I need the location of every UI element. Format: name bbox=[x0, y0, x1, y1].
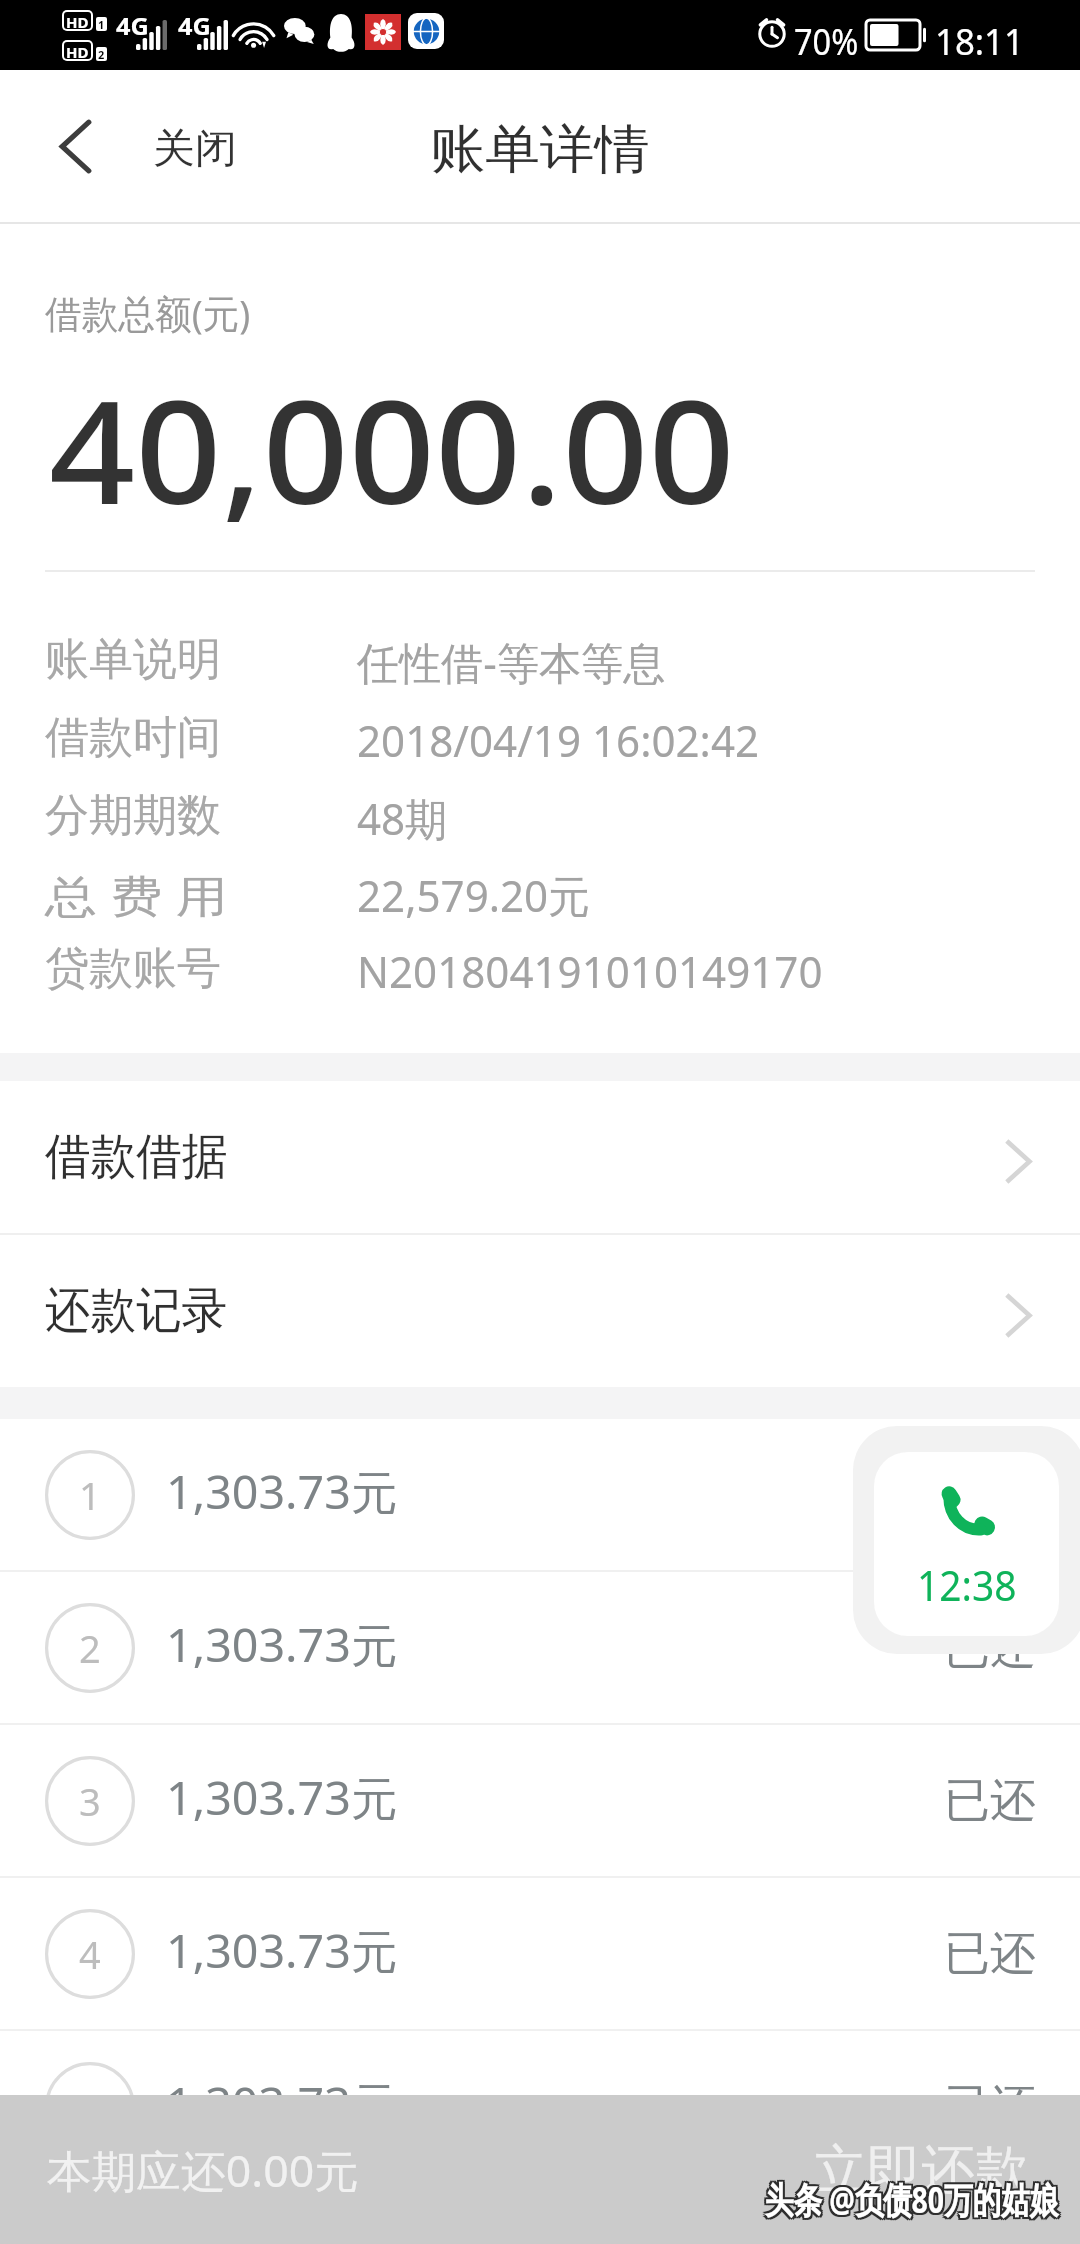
staticText: 2018/04/19 16:02:42 bbox=[357, 710, 760, 770]
button[interactable]: Ongoing call bbox=[874, 1452, 1059, 1636]
staticText: 2 bbox=[79, 1622, 101, 1674]
button[interactable]: 借款借据 bbox=[0, 1081, 1080, 1233]
staticText: 已还 bbox=[944, 1466, 1036, 1524]
staticText: 分期期数 bbox=[45, 788, 221, 843]
staticText: HD bbox=[66, 12, 89, 29]
button[interactable]: 1 bbox=[0, 1419, 1080, 1570]
button[interactable]: 4 bbox=[0, 1878, 1080, 2029]
staticText: 70% bbox=[794, 15, 859, 65]
button[interactable]: 还款记录 bbox=[0, 1235, 1080, 1387]
staticText: 已还 bbox=[944, 1772, 1036, 1830]
staticText: N201804191010149170 bbox=[357, 941, 823, 1001]
staticText: 18:11 bbox=[935, 15, 1024, 65]
staticText: 4G bbox=[116, 10, 149, 41]
staticText: 借款时间 bbox=[45, 710, 221, 765]
staticText: 头条 @负债80万的姑娘 bbox=[767, 2173, 1060, 2222]
staticText: 12:38 bbox=[917, 1557, 1017, 1613]
staticText: 头条 @负债80万的姑娘 bbox=[763, 2175, 1056, 2224]
staticText: 4G bbox=[178, 10, 211, 41]
staticText: 头条 @负债80万的姑娘 bbox=[765, 2175, 1058, 2224]
staticText: 1,303.73元 bbox=[166, 1613, 398, 1676]
staticText: 3 bbox=[79, 1775, 101, 1827]
staticText: 关闭 bbox=[153, 123, 237, 173]
staticText: 贷款账号 bbox=[45, 941, 221, 996]
staticText: 总 费 用 bbox=[45, 865, 228, 925]
staticText: 还款记录 bbox=[45, 1280, 227, 1342]
staticText: 1,303.73元 bbox=[166, 1460, 398, 1523]
staticText: 头条 @负债80万的姑娘 bbox=[763, 2173, 1056, 2222]
staticText: 40,000.00 bbox=[49, 353, 735, 545]
staticText: 账单详情 bbox=[430, 117, 650, 183]
staticText: 头条 @负债80万的姑娘 bbox=[765, 2177, 1058, 2226]
staticText: 任性借-等本等息 bbox=[357, 632, 666, 692]
staticText: 1 bbox=[79, 1469, 101, 1521]
staticText: HD bbox=[66, 42, 89, 59]
staticText: 1,303.73元 bbox=[166, 1766, 398, 1829]
staticText: 本期应还0.00元 bbox=[47, 2140, 360, 2200]
staticText: 1 bbox=[98, 17, 105, 31]
button[interactable]: 3 bbox=[0, 1725, 1080, 1876]
button[interactable]: 2 bbox=[0, 1572, 1080, 1723]
staticText: 已还 bbox=[944, 2078, 1036, 2136]
staticText: 头条 @负债80万的姑娘 bbox=[767, 2175, 1060, 2224]
staticText: 2 bbox=[98, 47, 105, 61]
button[interactable]: 本期应还0.00元 bbox=[0, 2095, 680, 2244]
staticText: 48期 bbox=[357, 788, 448, 848]
button[interactable]: Close bbox=[0, 70, 265, 222]
staticText: 账单说明 bbox=[45, 632, 221, 687]
staticText: 借款借据 bbox=[45, 1126, 227, 1188]
staticText: 4 bbox=[79, 1928, 101, 1980]
staticText: 已还 bbox=[944, 1619, 1036, 1677]
staticText: 借款总额(元) bbox=[45, 286, 251, 339]
staticText: 已还 bbox=[944, 1925, 1036, 1983]
staticText: 1,303.73元 bbox=[166, 1919, 398, 1982]
staticText: 头条 @负债80万的姑娘 bbox=[763, 2177, 1056, 2226]
button[interactable]: 5 bbox=[0, 2031, 1080, 2182]
staticText: 头条 @负债80万的姑娘 bbox=[765, 2173, 1058, 2222]
staticText: 5 bbox=[79, 2081, 101, 2133]
staticText: 1,303.73元 bbox=[166, 2072, 398, 2135]
staticText: 头条 @负债80万的姑娘 bbox=[767, 2177, 1060, 2226]
staticText: 立即还款 bbox=[813, 2137, 1029, 2204]
button[interactable]: 立即还款 bbox=[680, 2095, 1080, 2244]
staticText: 22,579.20元 bbox=[357, 865, 590, 925]
